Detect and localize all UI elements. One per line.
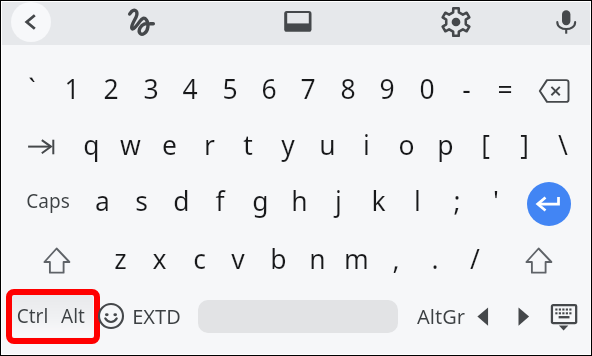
button[interactable]: l bbox=[387, 178, 447, 224]
button[interactable]: g bbox=[230, 178, 290, 224]
staticText: h bbox=[291, 183, 308, 219]
staticText: Alt bbox=[53, 303, 93, 329]
button[interactable]: u bbox=[297, 122, 357, 168]
staticText: 2 bbox=[103, 71, 119, 107]
button[interactable]: / bbox=[445, 236, 505, 282]
button[interactable]: [ bbox=[455, 122, 515, 168]
button[interactable]: AltGr bbox=[411, 293, 471, 339]
staticText: f bbox=[215, 183, 225, 219]
button[interactable]: f bbox=[190, 178, 250, 224]
button[interactable]: Settings bbox=[441, 7, 471, 37]
staticText: 3 bbox=[143, 71, 159, 107]
button[interactable]: k bbox=[348, 178, 408, 224]
button[interactable]: Backspace bbox=[536, 69, 576, 109]
button[interactable]: 8 bbox=[318, 66, 378, 112]
button[interactable]: j bbox=[308, 178, 368, 224]
button[interactable]: Voice input bbox=[551, 7, 581, 37]
button[interactable]: h bbox=[269, 178, 329, 224]
button[interactable]: , bbox=[366, 236, 426, 282]
button[interactable]: ] bbox=[494, 122, 554, 168]
button[interactable]: 1 bbox=[42, 66, 102, 112]
staticText: , bbox=[392, 241, 400, 277]
button[interactable]: Tab bbox=[22, 125, 62, 165]
staticText: l bbox=[414, 183, 421, 219]
staticText: ` bbox=[28, 71, 36, 107]
staticText: t bbox=[243, 127, 253, 163]
button[interactable]: Handwriting bbox=[125, 7, 155, 37]
button[interactable]: . bbox=[405, 236, 465, 282]
staticText: v bbox=[231, 241, 245, 277]
button[interactable]: x bbox=[129, 236, 189, 282]
button[interactable]: Caps bbox=[18, 178, 78, 224]
button[interactable]: w bbox=[100, 122, 160, 168]
staticText: u bbox=[319, 127, 336, 163]
staticText: k bbox=[371, 183, 386, 219]
button[interactable]: Move cursor right bbox=[506, 299, 540, 333]
button[interactable]: o bbox=[376, 122, 436, 168]
button[interactable]: 2 bbox=[81, 66, 141, 112]
staticText: g bbox=[252, 183, 269, 219]
button[interactable]: 3 bbox=[121, 66, 181, 112]
button[interactable]: n bbox=[287, 236, 347, 282]
button[interactable]: a bbox=[72, 178, 132, 224]
button[interactable]: ` bbox=[2, 66, 62, 112]
button[interactable]: ' bbox=[466, 178, 526, 224]
button[interactable]: Emoji bbox=[94, 299, 128, 333]
button[interactable]: e bbox=[139, 122, 199, 168]
staticText: 0 bbox=[419, 71, 435, 107]
staticText: r bbox=[204, 127, 215, 163]
button[interactable]: p bbox=[415, 122, 475, 168]
staticText: m bbox=[344, 241, 369, 277]
button[interactable]: 0 bbox=[397, 66, 457, 112]
staticText: AltGr bbox=[417, 303, 465, 330]
button[interactable]: s bbox=[111, 178, 171, 224]
button[interactable]: - bbox=[436, 66, 496, 112]
button[interactable]: 4 bbox=[160, 66, 220, 112]
button[interactable]: Hide keyboard bbox=[547, 299, 581, 333]
staticText: [ bbox=[481, 127, 490, 163]
button[interactable]: t bbox=[218, 122, 278, 168]
button[interactable]: = bbox=[475, 66, 535, 112]
button[interactable]: z bbox=[90, 236, 150, 282]
button[interactable]: ; bbox=[427, 178, 487, 224]
button[interactable]: Shift bbox=[519, 240, 559, 280]
staticText: c bbox=[193, 241, 206, 277]
button[interactable]: Dock keyboard bbox=[283, 7, 313, 37]
staticText: ; bbox=[453, 183, 461, 219]
button[interactable]: Shift bbox=[37, 240, 77, 280]
button[interactable]: 7 bbox=[278, 66, 338, 112]
staticText: EXTD bbox=[132, 303, 181, 330]
staticText: 7 bbox=[300, 71, 316, 107]
staticText: Ctrl bbox=[12, 303, 53, 329]
button[interactable]: 9 bbox=[357, 66, 417, 112]
button[interactable]: d bbox=[151, 178, 211, 224]
button[interactable]: r bbox=[179, 122, 239, 168]
button[interactable]: m bbox=[326, 236, 386, 282]
staticText: - bbox=[462, 71, 471, 107]
button[interactable]: v bbox=[208, 236, 268, 282]
button[interactable]: Enter bbox=[527, 182, 571, 226]
staticText: y bbox=[281, 127, 295, 163]
button[interactable]: 6 bbox=[239, 66, 299, 112]
staticText: q bbox=[83, 127, 100, 163]
button[interactable]: Back bbox=[11, 2, 51, 42]
staticText: b bbox=[270, 241, 287, 277]
staticText: ] bbox=[520, 127, 529, 163]
staticText: x bbox=[152, 241, 167, 277]
button[interactable]: Move cursor left bbox=[467, 299, 501, 333]
staticText: p bbox=[437, 127, 454, 163]
button[interactable]: EXTD bbox=[126, 293, 186, 339]
staticText: \ bbox=[558, 127, 568, 163]
button[interactable]: i bbox=[336, 122, 396, 168]
button[interactable]: \ bbox=[533, 122, 592, 168]
button[interactable]: y bbox=[258, 122, 318, 168]
staticText: s bbox=[135, 183, 148, 219]
button[interactable]: c bbox=[169, 236, 229, 282]
button[interactable]: q bbox=[61, 122, 121, 168]
button[interactable]: 5 bbox=[200, 66, 260, 112]
button[interactable]: b bbox=[248, 236, 308, 282]
button[interactable]: Ctrl bbox=[12, 295, 93, 337]
staticText: 4 bbox=[182, 71, 198, 107]
staticText: Caps bbox=[26, 188, 70, 214]
